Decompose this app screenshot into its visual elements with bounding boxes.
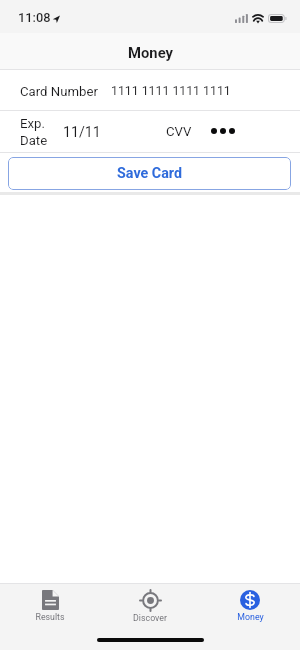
button[interactable]: Exp. xyxy=(0,111,300,152)
staticText: Exp. xyxy=(20,116,45,131)
button[interactable]: Card Number xyxy=(0,70,300,110)
staticText: Card Number xyxy=(20,84,98,99)
staticText: CVV xyxy=(166,124,192,139)
staticText: Money xyxy=(237,612,264,622)
staticText: Discover xyxy=(133,613,167,623)
staticText: Date xyxy=(20,133,48,148)
staticText: Save Card xyxy=(117,165,182,182)
staticText: Results xyxy=(35,612,65,622)
button[interactable]: Results xyxy=(0,590,100,630)
button[interactable]: Save Card xyxy=(8,157,291,190)
button[interactable]: Money xyxy=(200,590,300,630)
button[interactable]: Discover xyxy=(100,590,200,630)
staticText: 11:08 xyxy=(18,10,51,25)
staticText: 1111 1111 1111 1111 xyxy=(111,84,231,98)
staticText: 11/11 xyxy=(63,124,101,141)
staticText: Money xyxy=(128,44,173,61)
